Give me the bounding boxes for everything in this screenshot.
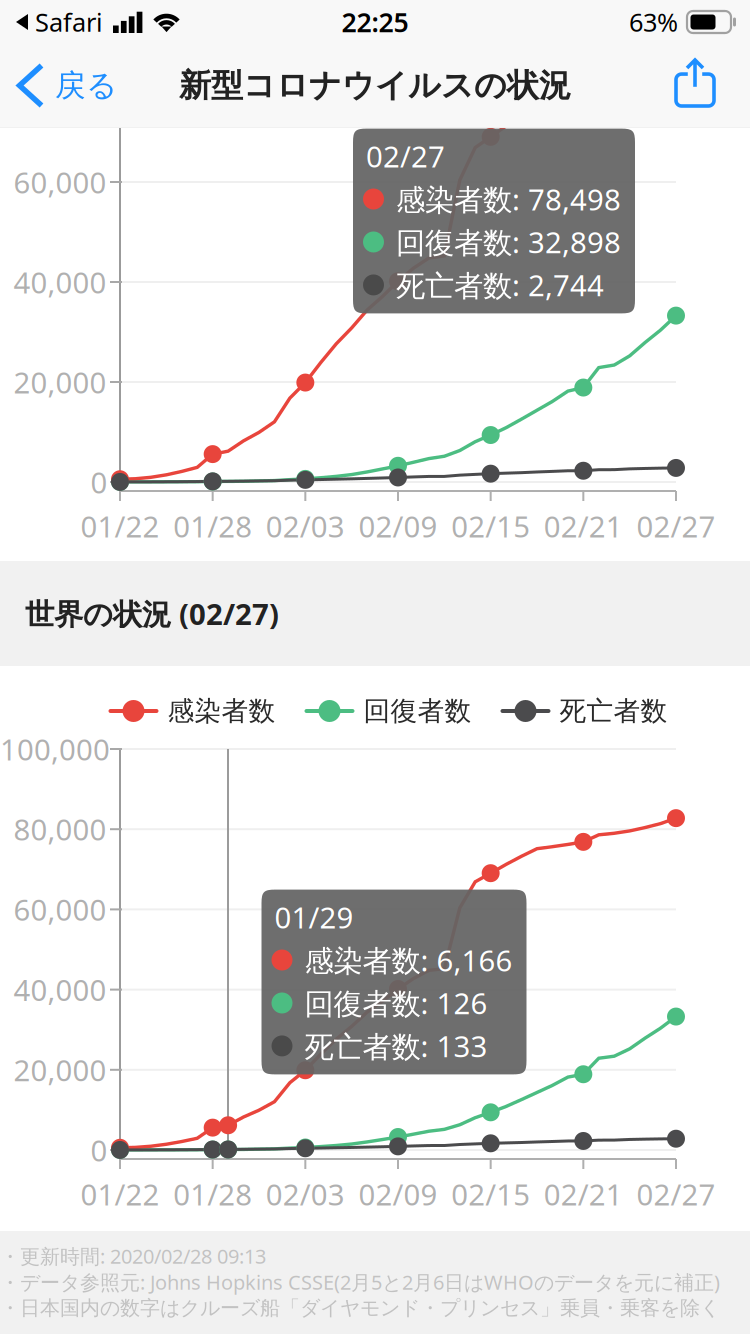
staticText: 死亡者数 bbox=[559, 695, 667, 727]
staticText: 80,000 bbox=[13, 810, 106, 849]
staticText: 01/28 bbox=[173, 1174, 252, 1213]
staticText: 01/22 bbox=[80, 506, 159, 545]
staticText: ・日本国内の数字はクルーズ船「ダイヤモンド・プリンセス」乗員・乗客を除く bbox=[0, 1296, 720, 1320]
staticText: 01/22 bbox=[80, 1174, 159, 1213]
staticText: 22:25 bbox=[341, 4, 408, 40]
staticText: 02/21 bbox=[544, 506, 623, 545]
button[interactable]: 戻る bbox=[0, 44, 131, 127]
staticText: 40,000 bbox=[13, 970, 106, 1009]
staticText: 20,000 bbox=[13, 362, 106, 401]
staticText: 感染者数 bbox=[167, 695, 275, 727]
staticText: 100,000 bbox=[0, 729, 110, 768]
staticText: 60,000 bbox=[13, 162, 106, 201]
staticText: 世界の状況 (02/27) bbox=[25, 594, 279, 633]
staticText: Safari bbox=[35, 5, 103, 39]
staticText: 20,000 bbox=[13, 1050, 106, 1089]
staticText: ・データ参照元: Johns Hopkins CSSE(2月5と2月6日はWHO… bbox=[0, 1269, 720, 1295]
staticText: 回復者数: 126 bbox=[304, 983, 487, 1022]
staticText: 回復者数: 32,898 bbox=[396, 222, 621, 261]
staticText: 02/03 bbox=[266, 1174, 345, 1213]
staticText: 感染者数: 6,166 bbox=[304, 940, 512, 979]
staticText: 01/28 bbox=[173, 506, 252, 545]
staticText: 回復者数 bbox=[363, 695, 471, 727]
staticText: 新型コロナウイルスの状況 bbox=[179, 66, 571, 105]
staticText: 戻る bbox=[55, 67, 117, 104]
staticText: 感染者数: 78,498 bbox=[396, 179, 621, 218]
staticText: 63% bbox=[629, 5, 678, 39]
staticText: 0 bbox=[90, 462, 107, 501]
staticText: 40,000 bbox=[13, 262, 106, 301]
staticText: 02/15 bbox=[451, 506, 530, 545]
staticText: 01/29 bbox=[274, 898, 353, 937]
staticText: 02/09 bbox=[358, 1174, 437, 1213]
staticText: 02/03 bbox=[266, 506, 345, 545]
staticText: 02/27 bbox=[366, 137, 445, 176]
staticText: 死亡者数: 133 bbox=[304, 1026, 487, 1065]
staticText: 02/27 bbox=[636, 506, 715, 545]
staticText: 02/27 bbox=[636, 1174, 715, 1213]
staticText: 60,000 bbox=[13, 890, 106, 929]
staticText: 死亡者数: 2,744 bbox=[396, 265, 604, 304]
staticText: 0 bbox=[90, 1130, 107, 1169]
staticText: ・更新時間: 2020/02/28 09:13 bbox=[0, 1243, 266, 1269]
button[interactable]: 共有 bbox=[654, 44, 750, 127]
staticText: 02/09 bbox=[358, 506, 437, 545]
staticText: 02/21 bbox=[544, 1174, 623, 1213]
staticText: 02/15 bbox=[451, 1174, 530, 1213]
